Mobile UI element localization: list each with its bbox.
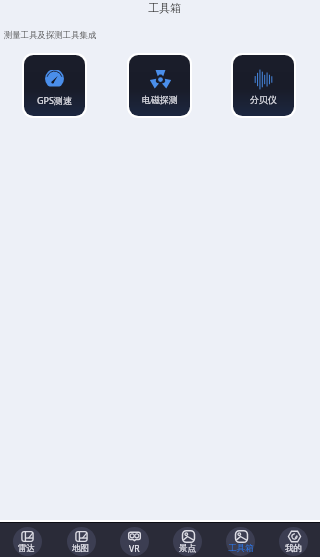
- staticText: 我的: [285, 543, 303, 554]
- staticText: 工具箱: [148, 1, 181, 15]
- staticText: 雷达: [18, 543, 36, 554]
- button[interactable]: Radar: [0, 523, 54, 557]
- button[interactable]: 分贝仪: [233, 55, 294, 116]
- staticText: 地图: [72, 543, 90, 554]
- button[interactable]: Profile: [267, 523, 320, 557]
- staticText: GPS测速: [37, 94, 72, 106]
- staticText: 景点: [179, 543, 197, 554]
- staticText: 测量工具及探测工具集成: [4, 30, 97, 41]
- button[interactable]: Map: [54, 523, 108, 557]
- button[interactable]: VR: [108, 523, 161, 557]
- staticText: VR: [129, 543, 140, 555]
- staticText: 分贝仪: [250, 94, 277, 105]
- button[interactable]: Attractions: [161, 523, 214, 557]
- staticText: 电磁探测: [142, 94, 178, 105]
- button[interactable]: 电磁探测: [129, 55, 190, 116]
- button[interactable]: GPS测速: [24, 55, 85, 116]
- staticText: 工具箱: [228, 543, 254, 554]
- button[interactable]: Toolbox: [214, 523, 267, 557]
